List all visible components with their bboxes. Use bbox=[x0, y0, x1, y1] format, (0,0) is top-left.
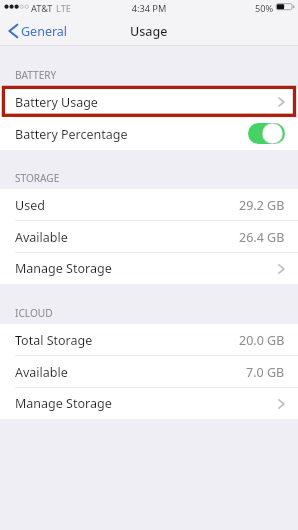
staticText: Battery Percentage bbox=[15, 126, 128, 143]
staticText: AT&T bbox=[31, 2, 53, 15]
button[interactable]: Available bbox=[0, 356, 298, 388]
button[interactable]: Battery Percentage bbox=[0, 118, 298, 150]
staticText: Battery Usage bbox=[15, 94, 98, 111]
staticText: Manage Storage bbox=[15, 395, 112, 412]
staticText: 7.0 GB bbox=[246, 364, 285, 381]
button[interactable]: Total Storage bbox=[0, 324, 298, 356]
staticText: 20.0 GB bbox=[239, 332, 285, 349]
button[interactable]: Manage Storage bbox=[0, 388, 298, 419]
button[interactable]: Manage Storage bbox=[0, 253, 298, 284]
staticText: Available bbox=[15, 364, 68, 381]
button[interactable]: Available bbox=[0, 221, 298, 253]
staticText: Manage Storage bbox=[15, 260, 112, 277]
staticText: General bbox=[21, 23, 68, 40]
button[interactable]: Used bbox=[0, 189, 298, 221]
button[interactable]: Battery Usage bbox=[0, 86, 298, 118]
staticText: LTE bbox=[56, 2, 71, 15]
staticText: 29.2 GB bbox=[239, 197, 285, 214]
staticText: Used bbox=[15, 197, 45, 214]
staticText: Usage bbox=[130, 23, 168, 40]
staticText: 4:34 PM bbox=[0, 2, 298, 15]
staticText: Total Storage bbox=[15, 332, 93, 349]
staticText: Available bbox=[15, 229, 68, 246]
staticText: STORAGE bbox=[15, 171, 60, 185]
staticText: 26.4 GB bbox=[239, 229, 285, 246]
staticText: ICLOUD bbox=[15, 306, 53, 320]
staticText: BATTERY bbox=[15, 68, 57, 82]
button[interactable]: General bbox=[0, 16, 76, 46]
staticText: 50% bbox=[255, 2, 274, 15]
